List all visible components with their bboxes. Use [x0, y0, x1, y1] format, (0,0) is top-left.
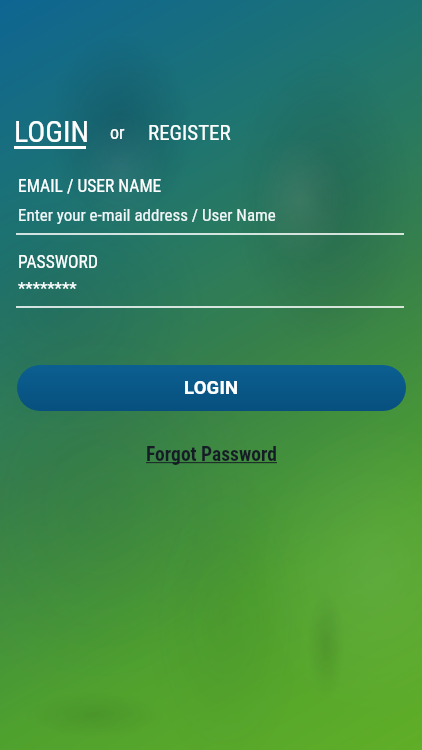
staticText: LOGIN: [184, 377, 239, 399]
button[interactable]: LOGIN: [14, 114, 90, 149]
button[interactable]: Forgot Password: [146, 443, 277, 466]
staticText: or: [110, 122, 125, 143]
button[interactable]: REGISTER: [148, 121, 231, 146]
staticText: EMAIL / USER NAME: [18, 176, 162, 197]
staticText: ********: [18, 278, 77, 298]
staticText: PASSWORD: [18, 252, 98, 273]
button[interactable]: LOGIN: [17, 365, 406, 411]
staticText: Enter your e-mail address / User Name: [18, 205, 276, 225]
